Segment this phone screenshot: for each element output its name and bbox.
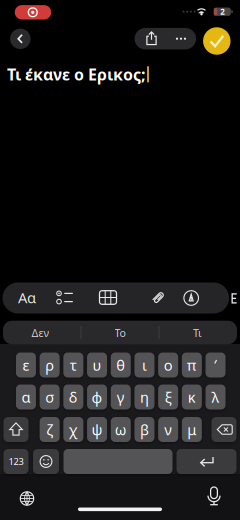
button[interactable]: κ bbox=[182, 384, 202, 409]
button[interactable]: Table bbox=[93, 282, 123, 313]
staticText: υ bbox=[92, 355, 101, 375]
staticText: λ bbox=[211, 387, 219, 407]
staticText: η bbox=[140, 387, 149, 407]
button[interactable]: τ bbox=[63, 352, 83, 377]
button[interactable]: ν bbox=[158, 417, 178, 442]
button[interactable]: ξ bbox=[158, 384, 178, 409]
staticText: Τι bbox=[193, 326, 202, 340]
button[interactable]: γ bbox=[111, 384, 131, 409]
staticText: ω bbox=[115, 420, 127, 439]
button[interactable]: φ bbox=[87, 384, 107, 409]
button[interactable]: Back bbox=[10, 28, 31, 49]
staticText: δ bbox=[69, 387, 78, 407]
button[interactable]: π bbox=[182, 352, 202, 377]
button[interactable]: ε bbox=[16, 352, 36, 377]
staticText: ν bbox=[164, 420, 172, 439]
staticText: α bbox=[21, 387, 30, 407]
button[interactable]: χ bbox=[63, 417, 83, 442]
button[interactable]: Dictate bbox=[203, 483, 225, 509]
button[interactable]: Done bbox=[203, 27, 231, 55]
button[interactable]: θ bbox=[111, 352, 131, 377]
staticText: ξ bbox=[165, 387, 172, 407]
staticText: χ bbox=[69, 420, 78, 439]
staticText: Δεν bbox=[31, 326, 49, 340]
button[interactable]: Checklist bbox=[49, 282, 79, 313]
button[interactable]: υ bbox=[87, 352, 107, 377]
staticText: ι bbox=[142, 355, 147, 375]
staticText: κ bbox=[188, 387, 196, 407]
button[interactable]: 123 bbox=[3, 449, 28, 474]
staticText: φ bbox=[91, 387, 102, 407]
staticText: ψ bbox=[91, 420, 102, 439]
button[interactable]: Δεν bbox=[2, 320, 78, 345]
staticText: β bbox=[140, 420, 149, 439]
staticText: π bbox=[187, 355, 197, 375]
staticText: 123 bbox=[8, 455, 23, 468]
button[interactable]: More bbox=[166, 28, 196, 49]
staticText: τ bbox=[70, 355, 77, 375]
button[interactable]: Format bbox=[12, 282, 42, 313]
button[interactable]: Screen recording bbox=[15, 5, 51, 19]
button[interactable]: Tonos bbox=[205, 352, 225, 377]
button[interactable]: Markup bbox=[176, 282, 206, 313]
staticText: ο bbox=[164, 355, 173, 375]
button[interactable]: ρ bbox=[40, 352, 60, 377]
staticText: ζ bbox=[46, 420, 53, 439]
button[interactable]: Shift bbox=[3, 417, 28, 442]
button[interactable]: Return bbox=[176, 449, 236, 474]
button[interactable]: ψ bbox=[87, 417, 107, 442]
staticText: ε bbox=[22, 355, 29, 375]
button[interactable]: σ bbox=[40, 384, 60, 409]
staticText: Aα bbox=[18, 288, 36, 307]
staticText: ρ bbox=[45, 355, 54, 375]
staticText: θ bbox=[116, 355, 125, 375]
button[interactable]: λ bbox=[205, 384, 225, 409]
button[interactable]: Next keyboard bbox=[14, 485, 40, 511]
button[interactable]: ο bbox=[158, 352, 178, 377]
staticText: σ bbox=[45, 387, 54, 407]
button[interactable]: ω bbox=[111, 417, 131, 442]
button[interactable]: α bbox=[16, 384, 36, 409]
button[interactable]: μ bbox=[182, 417, 202, 442]
button[interactable]: Τι bbox=[159, 320, 235, 345]
button[interactable]: Share bbox=[136, 28, 166, 49]
button[interactable]: δ bbox=[63, 384, 83, 409]
button[interactable]: Attach bbox=[143, 282, 173, 313]
button[interactable]: ζ bbox=[40, 417, 60, 442]
button[interactable]: η bbox=[134, 384, 154, 409]
staticText: 2 bbox=[220, 6, 225, 17]
button[interactable]: Emoji bbox=[33, 449, 59, 474]
staticText: γ bbox=[117, 387, 125, 407]
button[interactable]: Delete bbox=[211, 417, 236, 442]
button[interactable]: Space bbox=[63, 449, 172, 474]
staticText: Τι έκανε ο Ερικος; bbox=[7, 64, 146, 85]
button[interactable]: β bbox=[134, 417, 154, 442]
button[interactable]: Το bbox=[82, 320, 158, 345]
button[interactable]: ι bbox=[134, 352, 154, 377]
staticText: Το bbox=[114, 326, 125, 340]
staticText: μ bbox=[187, 420, 196, 439]
